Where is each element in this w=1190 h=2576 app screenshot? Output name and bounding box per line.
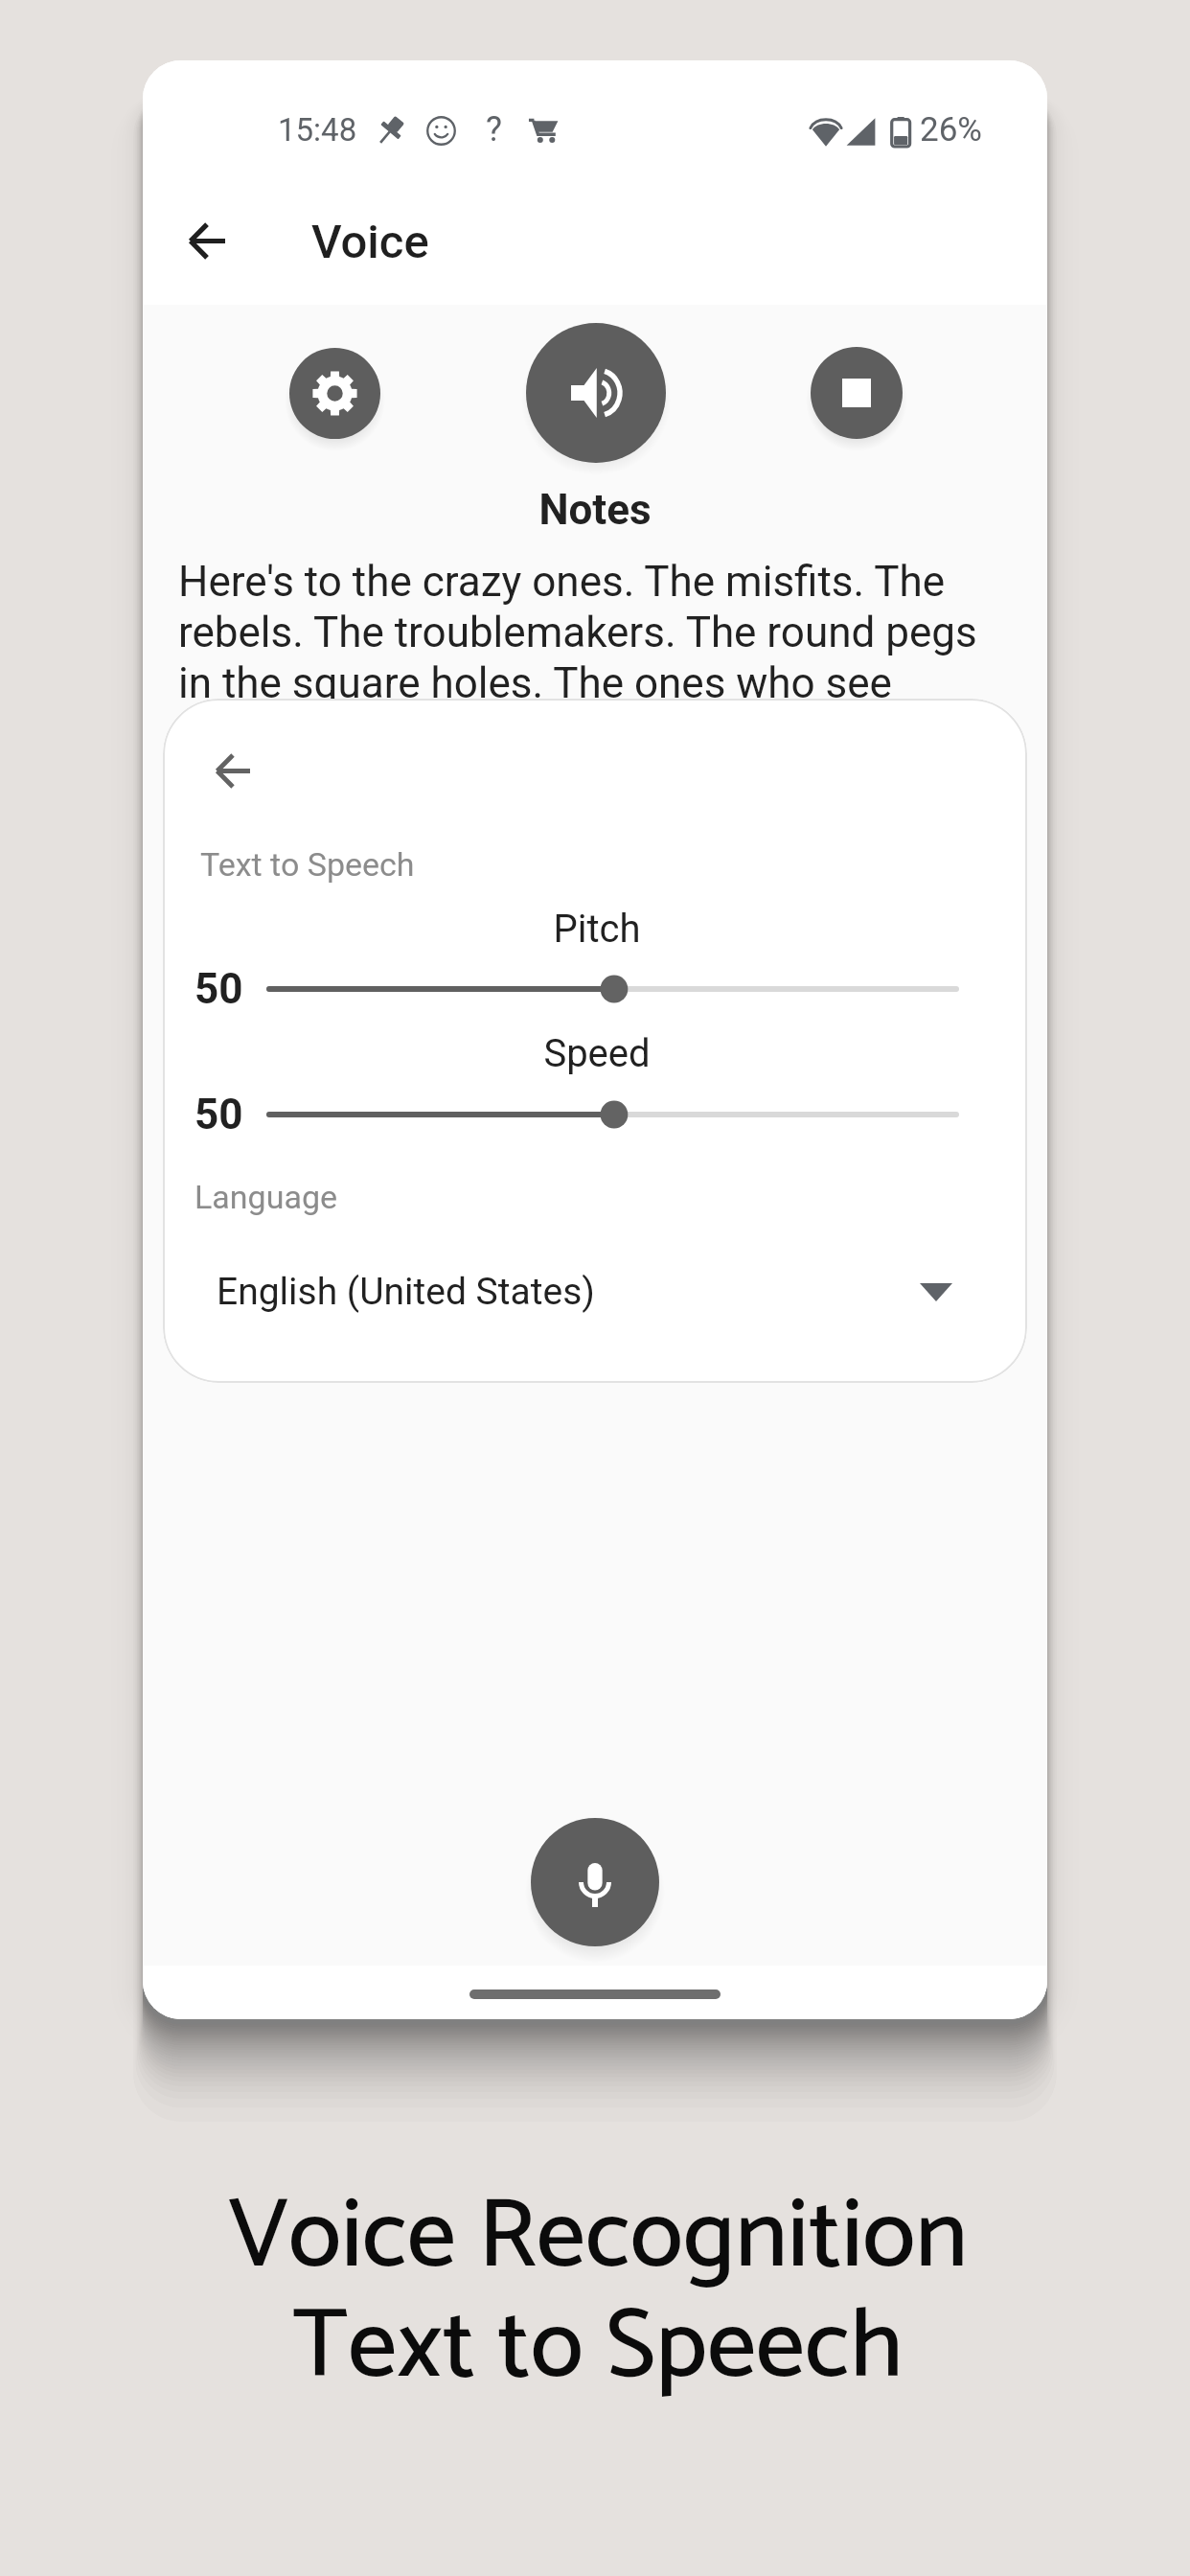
button[interactable]: Stop bbox=[811, 347, 903, 439]
staticText: 50 bbox=[195, 1090, 243, 1139]
button[interactable]: Back bbox=[163, 196, 251, 285]
staticText: Text to Speech bbox=[200, 845, 415, 884]
staticText: ? bbox=[486, 109, 503, 149]
staticText: Pitch bbox=[165, 907, 1027, 952]
button[interactable]: English (United States) bbox=[163, 1251, 1027, 1333]
staticText: 15:48 bbox=[278, 111, 357, 149]
staticText: Here's to the crazy ones. The misfits. T… bbox=[178, 557, 979, 758]
button[interactable]: Record voice bbox=[531, 1818, 659, 1946]
staticText: Voice Recognition bbox=[3, 2159, 1190, 2318]
staticText: 26% bbox=[920, 110, 982, 149]
staticText: Notes bbox=[143, 485, 1047, 535]
staticText: 50 bbox=[195, 964, 243, 1014]
staticText: Language bbox=[195, 1178, 338, 1216]
staticText: Speed bbox=[165, 1031, 1027, 1076]
staticText: Voice bbox=[311, 215, 429, 269]
button[interactable]: Back bbox=[189, 726, 277, 815]
staticText: English (United States) bbox=[217, 1270, 595, 1314]
button[interactable]: Speak bbox=[526, 323, 666, 463]
staticText: Text to Speech bbox=[3, 2269, 1190, 2428]
button[interactable]: Pitch bbox=[269, 968, 956, 1010]
button[interactable]: Settings bbox=[289, 348, 380, 439]
button[interactable]: Speed bbox=[269, 1093, 956, 1136]
